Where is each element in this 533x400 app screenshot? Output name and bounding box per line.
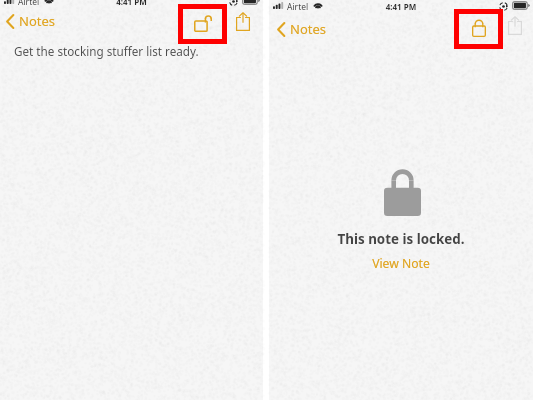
staticText: Notes (290, 20, 326, 38)
staticText: Get the stocking stuffer list ready. (14, 43, 199, 59)
staticText: 4:41 PM (0, 0, 263, 7)
button[interactable]: Share (231, 9, 255, 34)
button[interactable]: Lock note (454, 9, 503, 49)
button[interactable]: Notes (277, 20, 321, 38)
button[interactable]: Notes (6, 12, 50, 30)
staticText: Airtel (287, 1, 309, 13)
staticText: 4:41 PM (269, 1, 533, 12)
button[interactable]: Unlock note (178, 4, 227, 44)
staticText: Airtel (18, 0, 40, 8)
staticText: This note is locked. (269, 230, 533, 248)
button[interactable]: View Note (269, 254, 533, 272)
staticText: View Note (372, 255, 430, 272)
button[interactable]: Share (503, 13, 527, 38)
staticText: Notes (19, 12, 55, 30)
